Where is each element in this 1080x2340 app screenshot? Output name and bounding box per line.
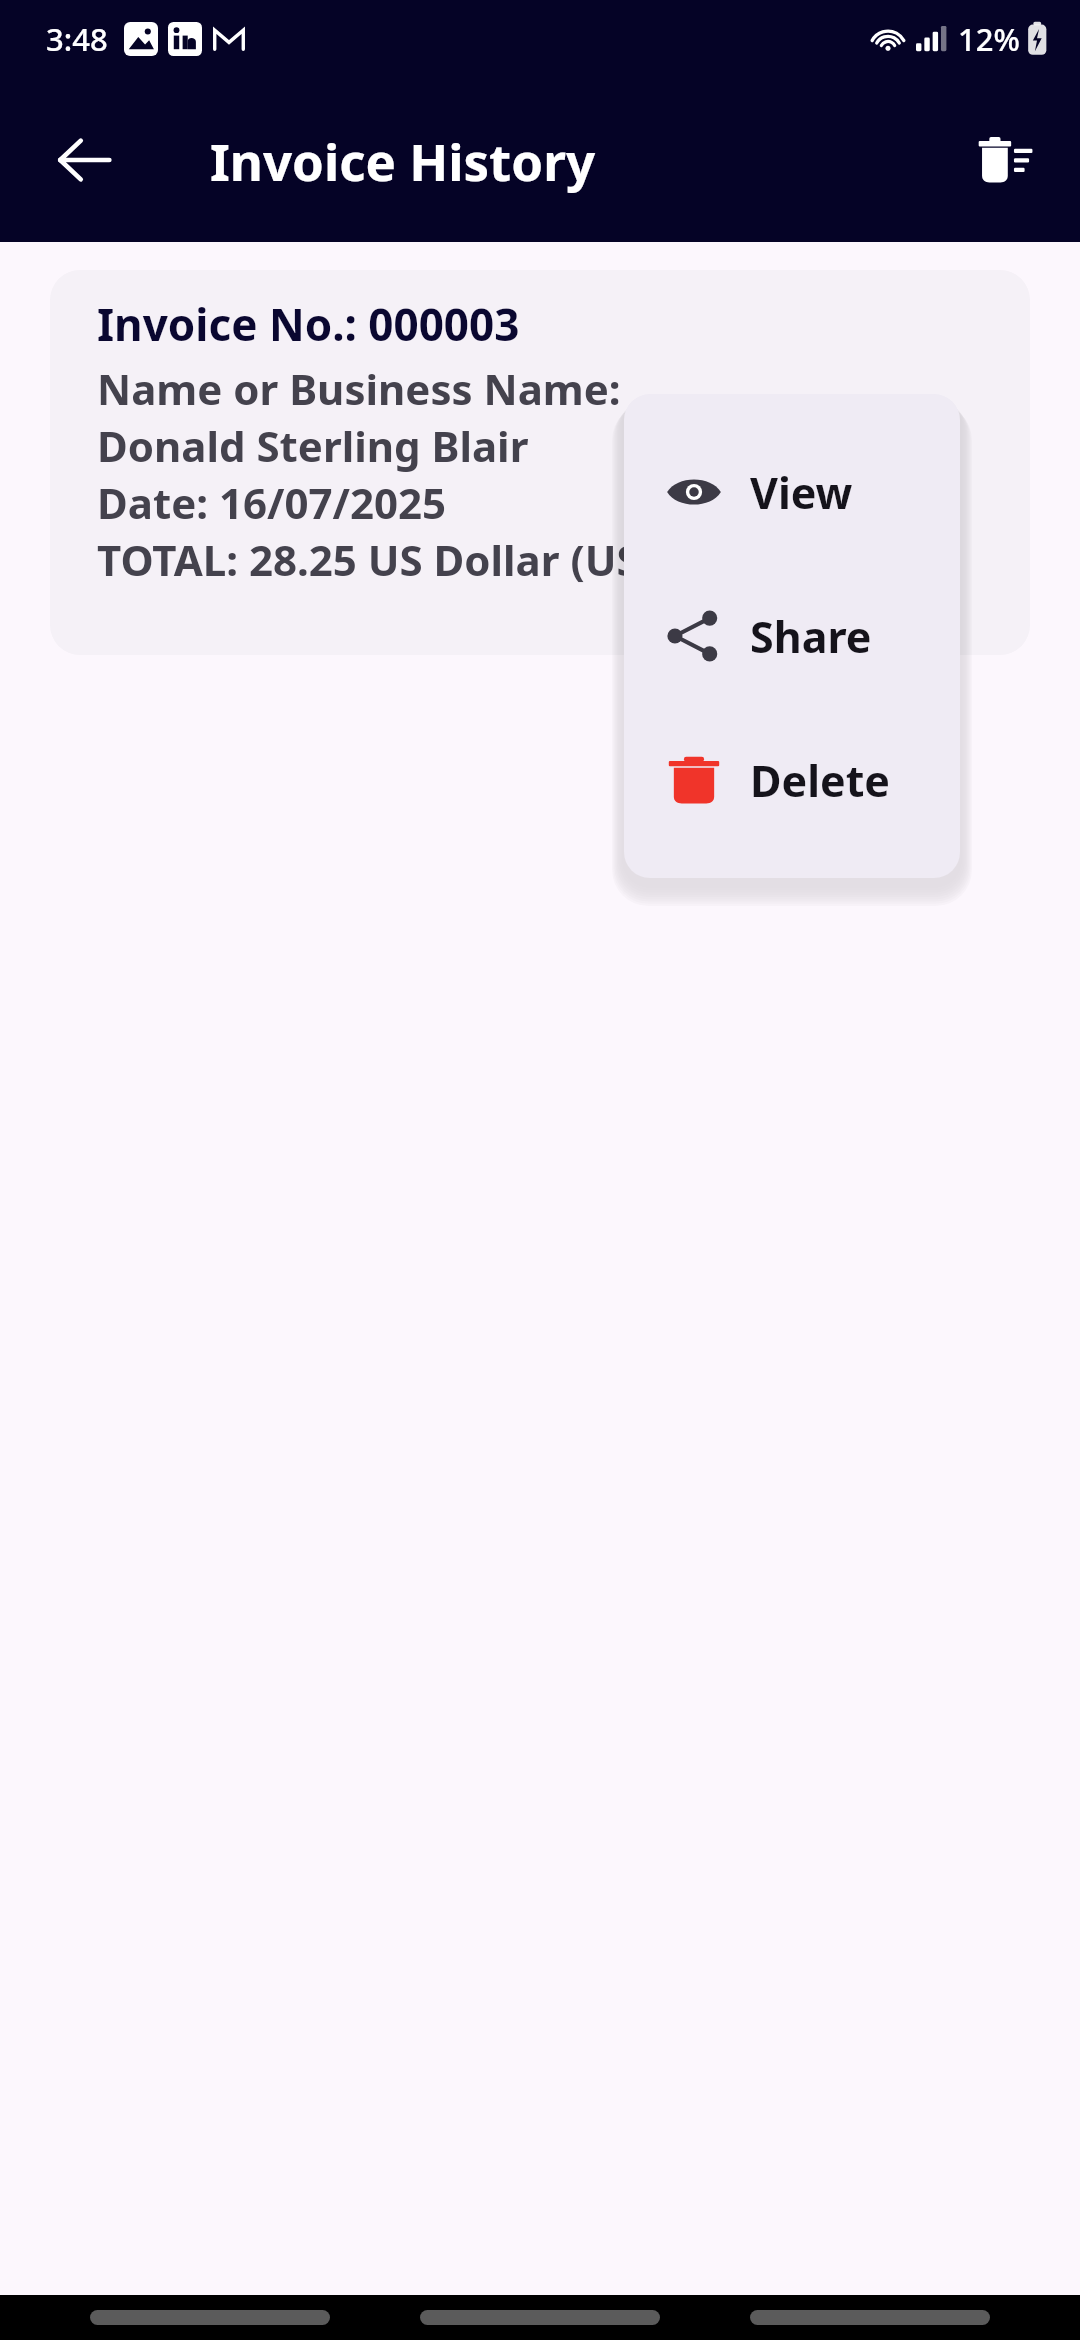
staticText: 3:48: [46, 18, 108, 60]
staticText: Date: 16/07/2025: [97, 474, 446, 531]
staticText: 12%: [958, 18, 1020, 60]
button[interactable]: Back: [30, 106, 138, 214]
staticText: Invoice No.: 000003: [97, 294, 520, 354]
button[interactable]: Delete: [624, 708, 960, 852]
staticText: Name or Business Name:: [97, 360, 621, 417]
staticText: Share: [750, 607, 872, 666]
button[interactable]: Delete all: [950, 105, 1060, 215]
button[interactable]: Share: [624, 564, 960, 708]
staticText: Invoice History: [210, 126, 596, 195]
button[interactable]: View: [624, 420, 960, 564]
staticText: Donald Sterling Blair: [97, 417, 529, 474]
button[interactable]: Invoice No.: 000003: [50, 270, 1030, 655]
button[interactable]: [420, 2310, 660, 2325]
button[interactable]: [750, 2310, 990, 2325]
staticText: Delete: [750, 751, 890, 810]
staticText: View: [750, 463, 853, 522]
staticText: TOTAL: 28.25 US Dollar (USD): [97, 531, 685, 588]
button[interactable]: [90, 2310, 330, 2325]
